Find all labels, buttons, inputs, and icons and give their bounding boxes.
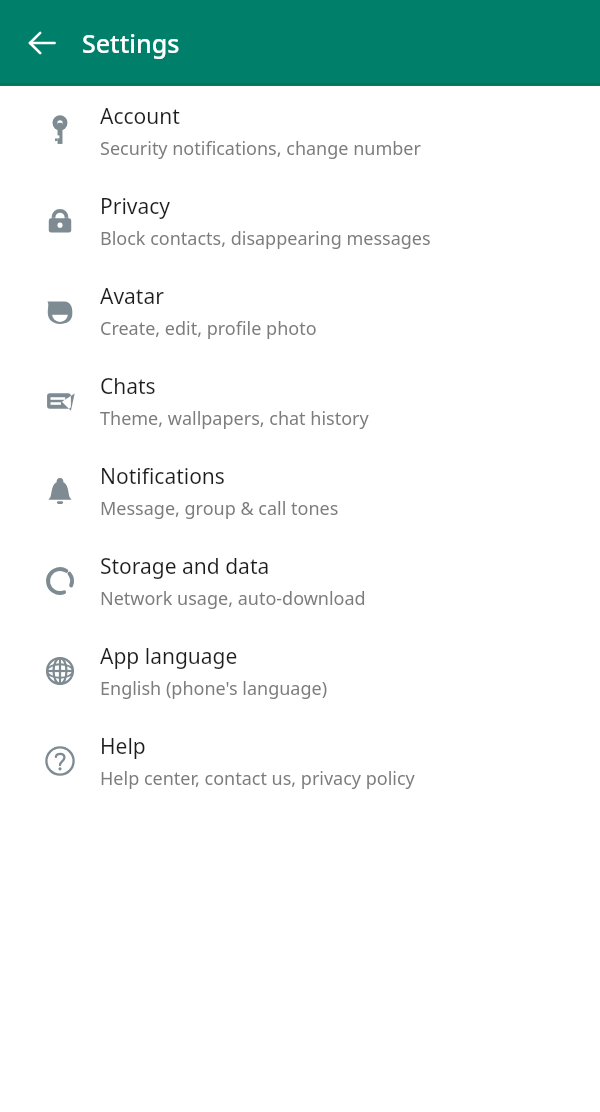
staticText: Create, edit, profile photo (100, 316, 317, 341)
staticText: Security notifications, change number (100, 136, 421, 161)
staticText: Network usage, auto-download (100, 586, 366, 611)
button[interactable]: App language (0, 626, 600, 716)
button[interactable]: Notifications (0, 446, 600, 536)
staticText: App language (100, 642, 238, 671)
staticText: Storage and data (100, 552, 270, 581)
button[interactable]: Help (0, 716, 600, 806)
staticText: Privacy (100, 192, 171, 221)
staticText: Account (100, 102, 180, 131)
button[interactable]: Privacy (0, 176, 600, 266)
staticText: Chats (100, 372, 156, 401)
staticText: Help center, contact us, privacy policy (100, 766, 415, 791)
button[interactable]: Storage and data (0, 536, 600, 626)
staticText: Avatar (100, 282, 164, 311)
button[interactable]: Account (0, 86, 600, 176)
staticText: Theme, wallpapers, chat history (100, 406, 369, 431)
staticText: Notifications (100, 462, 225, 491)
button[interactable]: Chats (0, 356, 600, 446)
staticText: Settings (82, 26, 180, 60)
staticText: Help (100, 732, 146, 761)
button[interactable]: Avatar (0, 266, 600, 356)
staticText: English (phone's language) (100, 676, 328, 701)
button[interactable]: Back (12, 13, 72, 73)
staticText: Block contacts, disappearing messages (100, 226, 431, 251)
staticText: Message, group & call tones (100, 496, 339, 521)
